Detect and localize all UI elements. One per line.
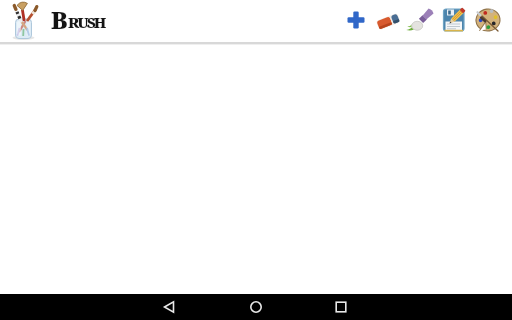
button[interactable]	[329, 295, 353, 319]
staticText: B	[51, 4, 68, 35]
button[interactable]	[438, 4, 470, 36]
button[interactable]	[472, 4, 504, 36]
button[interactable]	[244, 295, 268, 319]
button[interactable]	[8, 0, 44, 42]
staticText: RUSH	[68, 12, 105, 32]
button[interactable]	[157, 295, 181, 319]
button[interactable]	[372, 5, 404, 37]
button[interactable]	[403, 4, 435, 36]
button[interactable]	[340, 4, 372, 36]
